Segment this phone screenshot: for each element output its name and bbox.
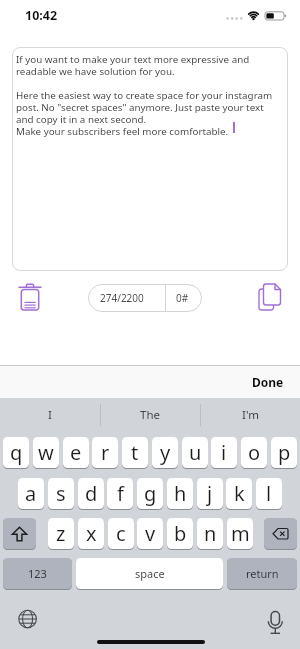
staticText: 274/2200 [100,291,144,305]
staticText: I'm [242,407,259,423]
button[interactable]: n [197,518,223,549]
button[interactable]: 123 [3,558,72,589]
staticText: g [144,480,157,507]
button[interactable]: r [92,437,118,468]
button[interactable]: m [227,518,253,549]
button[interactable]: 274/2200 [88,284,202,312]
staticText: x [86,520,97,547]
staticText: m [231,520,250,547]
button[interactable]: f [107,478,133,509]
button[interactable]: y [152,437,178,468]
button[interactable]: q [3,437,29,468]
staticText: 10:42 [25,7,58,24]
button[interactable]: a [18,478,44,509]
staticText: u [189,439,202,466]
staticText: k [234,480,245,507]
button[interactable]: t [122,437,148,468]
staticText: h [174,480,187,507]
button[interactable] [264,518,297,549]
button[interactable]: l [256,478,282,509]
button[interactable]: z [48,518,74,549]
button[interactable]: g [137,478,163,509]
staticText: r [101,439,110,466]
staticText: If you want to make your text more expre… [16,53,273,138]
staticText: i [221,439,227,466]
staticText: t [131,439,139,466]
button[interactable]: x [78,518,104,549]
staticText: return [246,566,279,581]
button[interactable]: i [211,437,237,468]
button[interactable] [16,282,44,313]
button[interactable] [255,281,285,314]
button[interactable]: o [241,437,267,468]
staticText: z [56,520,66,547]
staticText: w [38,439,54,466]
staticText: o [248,439,261,466]
button[interactable]: s [48,478,74,509]
button[interactable]: v [137,518,163,549]
staticText: e [70,439,82,466]
staticText: b [174,520,187,547]
staticText: q [10,439,23,466]
button[interactable]: I'm [200,398,300,432]
button[interactable]: b [167,518,193,549]
staticText: a [25,480,37,507]
staticText: f [117,480,124,507]
button[interactable]: d [78,478,104,509]
button[interactable]: h [167,478,193,509]
staticText: v [145,520,156,547]
button[interactable]: p [271,437,297,468]
button[interactable]: c [108,518,134,549]
button[interactable]: w [33,437,59,468]
staticText: d [85,480,98,507]
staticText: y [160,439,171,466]
staticText: j [207,480,213,507]
button[interactable]: u [182,437,208,468]
staticText: 0# [176,291,189,305]
button[interactable]: return [227,558,297,589]
button[interactable]: space [76,558,223,589]
button[interactable] [3,518,36,549]
staticText: The [140,407,160,423]
staticText: c [116,520,126,547]
staticText: space [135,566,165,581]
staticText: 123 [28,566,47,581]
button[interactable]: The [100,398,200,432]
button[interactable]: j [197,478,223,509]
staticText: Done [252,374,284,390]
button[interactable]: Done [0,365,300,398]
staticText: n [204,520,217,547]
button[interactable] [264,604,286,636]
staticText: l [266,480,272,507]
button[interactable]: I [0,398,100,432]
staticText: I [48,407,52,423]
staticText: s [56,480,66,507]
button[interactable]: k [226,478,252,509]
button[interactable] [16,608,40,632]
staticText: p [278,439,291,466]
button[interactable]: e [63,437,89,468]
